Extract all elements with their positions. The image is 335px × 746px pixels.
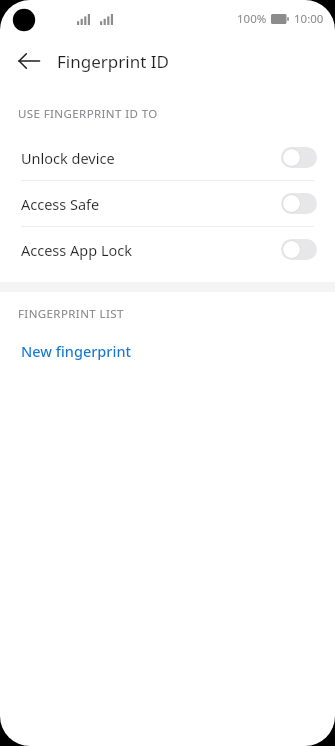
button[interactable]: Toggle off <box>281 239 317 260</box>
button[interactable]: Access App Lock <box>0 227 335 272</box>
button[interactable]: Toggle off <box>281 193 317 214</box>
button[interactable]: New fingerprint <box>0 336 335 366</box>
button[interactable]: Toggle off <box>281 147 317 168</box>
staticText: New fingerprint <box>21 341 132 361</box>
staticText: Access App Lock <box>21 240 281 260</box>
staticText: FINGERPRINT LIST <box>18 306 124 322</box>
staticText: Access Safe <box>21 194 281 214</box>
button[interactable]: Back <box>12 44 46 78</box>
staticText: 10:00 <box>294 11 324 27</box>
staticText: Fingerprint ID <box>57 50 169 73</box>
button[interactable]: Unlock device <box>0 135 335 180</box>
staticText: 100% <box>237 11 267 27</box>
staticText: USE FINGERPRINT ID TO <box>18 106 158 122</box>
staticText: Unlock device <box>21 148 281 168</box>
button[interactable]: Access Safe <box>0 181 335 226</box>
